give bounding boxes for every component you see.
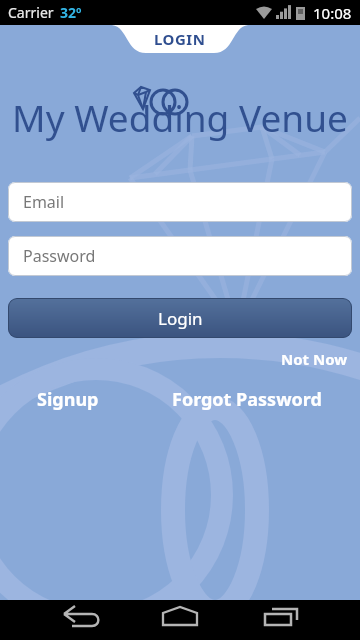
staticText: My Wedding Venue: [0, 92, 360, 142]
button[interactable]: [56, 600, 104, 640]
staticText: LOGIN: [154, 29, 206, 49]
button[interactable]: Password: [8, 236, 352, 276]
button[interactable]: LOGIN: [110, 25, 250, 53]
button[interactable]: Forgot Password: [172, 387, 322, 412]
button[interactable]: Not Now: [281, 349, 348, 369]
button[interactable]: Login: [8, 298, 352, 338]
button[interactable]: [156, 600, 204, 640]
button[interactable]: Email: [8, 182, 352, 222]
button[interactable]: Signup: [37, 387, 99, 412]
staticText: Password: [23, 245, 96, 267]
staticText: 10:08: [313, 3, 352, 23]
staticText: 32º: [60, 3, 82, 22]
staticText: Carrier: [8, 3, 54, 22]
staticText: Login: [158, 307, 203, 330]
staticText: Email: [23, 191, 65, 213]
button[interactable]: [260, 600, 308, 640]
